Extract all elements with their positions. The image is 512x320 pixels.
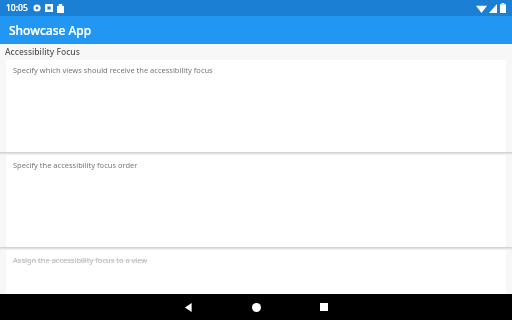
button[interactable]: Assign the accessibility focus to a view: [6, 250, 506, 294]
button[interactable]: Showcase App: [0, 16, 512, 44]
staticText: Specify which views should receive the a…: [13, 65, 213, 75]
button[interactable]: Home: [233, 294, 279, 320]
button[interactable]: Recent apps: [301, 294, 347, 320]
staticText: Assign the accessibility focus to a view: [13, 255, 148, 265]
staticText: Showcase App: [9, 22, 92, 38]
button[interactable]: Back: [165, 294, 211, 320]
button[interactable]: Specify which views should receive the a…: [6, 60, 506, 152]
staticText: Specify the accessibility focus order: [13, 160, 138, 170]
staticText: 10:05: [6, 2, 28, 14]
staticText: Accessibility Focus: [5, 46, 80, 58]
button[interactable]: Specify the accessibility focus order: [6, 155, 506, 247]
